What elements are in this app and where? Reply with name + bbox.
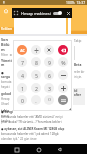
button[interactable]: Back [55,145,64,154]
staticText: 3 [48,85,51,92]
staticText: ir için. [74,75,82,79]
button[interactable]: 8 [31,57,41,67]
button[interactable]: Hesap makinesi [12,8,72,18]
button[interactable]: . [31,95,41,105]
button[interactable]: Recent apps [12,145,21,154]
button[interactable] [58,83,68,93]
button[interactable]: % [58,57,68,67]
staticText: AC [20,48,25,53]
button[interactable]: 2 [31,83,41,93]
button[interactable] [44,45,54,55]
staticText: 5 [35,72,38,79]
button[interactable]: 1 [17,83,27,93]
button[interactable]: 9 [44,57,54,67]
staticText: Yönetim [1,58,13,67]
staticText: olandan işik." 22 gün önce [1,137,37,141]
staticText: 1 [21,85,24,92]
staticText: 9 [48,59,51,66]
button[interactable] [58,70,68,80]
staticText: bil after [74,89,81,97]
staticText: konusunda haberler etti "çok adımlı 128g… [1,132,59,136]
staticText: 7 [21,59,24,66]
staticText: . [35,97,37,104]
button[interactable]: 0 [17,95,27,105]
button[interactable]: 4 [17,70,27,80]
staticText: 4 [21,72,24,79]
button[interactable]: Backspace [58,45,68,55]
button[interactable]: Home [2,7,9,14]
staticText: reler bir [74,70,85,74]
staticText: 0 [21,97,24,104]
staticText: Uhanl [1,102,10,106]
staticText: gokad [1,92,11,96]
button[interactable] [58,95,68,105]
staticText: Filtre ⚙ [1,53,13,57]
staticText: mesaj [1,114,10,118]
staticText: Hesap [1,97,10,101]
button[interactable]: 5 [31,70,41,80]
button[interactable]: Home [34,145,43,154]
button[interactable]: 7 [17,57,27,67]
staticText: konusunda haberler etti "AMD sürümü" ne … [1,115,63,119]
staticText: Hesap makinesi [21,11,51,16]
staticText: Reklam [1,27,13,31]
staticText: 2 [35,85,38,92]
staticText: hayat i [1,85,11,89]
staticText: ● Sevgi [1,110,13,114]
staticText: () [48,97,51,103]
button[interactable]: 6 [44,70,54,80]
staticText: Beta [74,63,82,67]
staticText: % [61,59,66,66]
staticText: 100% 13:37 [66,0,86,5]
button[interactable]: 3 [44,83,54,93]
staticText: çıkar acaba? TR sürümü...? Yorumlara bek… [1,120,62,124]
staticText: takip [1,109,10,113]
button[interactable]: AC [17,45,27,55]
button[interactable]: Toggle calculator [53,11,62,15]
button[interactable]: Close [65,10,71,16]
staticText: komuta [1,80,12,84]
staticText: ● aybasan, sizi ALINIR Kasım MI 128GB ol… [1,127,65,131]
staticText: Takip [74,39,82,43]
staticText: ● sorgu [1,71,13,79]
staticText: kardeş [1,119,11,123]
staticText: Son Bölüm [1,37,13,52]
staticText: 8 [35,59,38,66]
button[interactable] [31,45,41,55]
staticText: 6 [48,72,51,79]
button[interactable]: () [44,95,54,105]
